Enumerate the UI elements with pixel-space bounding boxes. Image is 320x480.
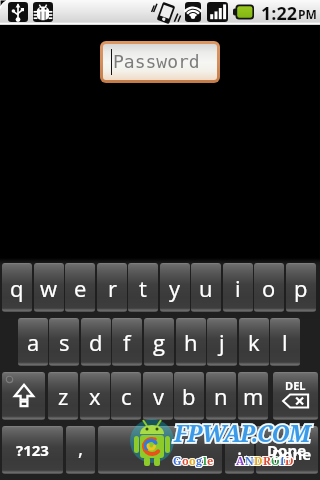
button[interactable]: Space	[98, 426, 222, 474]
staticText: l	[203, 453, 207, 468]
staticText: x	[89, 381, 101, 411]
staticText: I	[280, 453, 285, 468]
staticText: o	[189, 453, 196, 468]
staticText: A	[236, 453, 245, 468]
staticText: q	[10, 273, 24, 303]
staticText: o	[189, 453, 196, 468]
staticText: e	[207, 453, 214, 468]
staticText: Password	[113, 51, 200, 72]
staticText: N	[245, 453, 254, 468]
staticText: d	[89, 327, 103, 357]
button[interactable]: p	[286, 263, 316, 312]
staticText: ,	[78, 434, 84, 461]
staticText: e	[74, 273, 87, 303]
staticText: O	[271, 453, 280, 468]
staticText: f	[123, 327, 131, 357]
staticText: G	[173, 453, 182, 468]
button[interactable]: Password	[103, 44, 217, 80]
button[interactable]: n	[206, 372, 236, 420]
staticText: D	[254, 453, 263, 468]
button[interactable]: s	[49, 318, 79, 366]
staticText: FPWAP.COM	[174, 417, 310, 448]
button[interactable]: x	[80, 372, 110, 420]
staticText: R	[263, 453, 271, 468]
staticText: s	[59, 327, 70, 357]
staticText: j	[219, 327, 225, 357]
staticText: o	[262, 273, 276, 303]
button[interactable]: a	[18, 318, 48, 366]
staticText: Done	[267, 440, 307, 460]
button[interactable]: u	[191, 263, 221, 312]
staticText: w	[40, 273, 58, 303]
button[interactable]: q	[2, 263, 32, 312]
staticText: D	[254, 453, 263, 468]
staticText: l	[282, 327, 288, 357]
button[interactable]: t	[128, 263, 158, 312]
staticText: b	[182, 381, 196, 411]
button[interactable]: ?123	[2, 426, 63, 474]
staticText: FPWAP.COM	[174, 417, 310, 448]
staticText: R	[263, 453, 271, 468]
button[interactable]: e	[65, 263, 95, 312]
button[interactable]: m	[238, 372, 268, 420]
staticText: v	[153, 381, 164, 411]
staticText: .	[237, 434, 243, 461]
staticText: D	[285, 453, 294, 468]
staticText: D	[285, 453, 294, 468]
staticText: Done	[272, 444, 312, 464]
staticText: k	[248, 327, 260, 357]
staticText: p	[294, 273, 308, 303]
staticText: G	[173, 453, 182, 468]
staticText: c	[121, 381, 132, 411]
button[interactable]: .	[225, 426, 254, 474]
staticText: N	[245, 453, 254, 468]
button[interactable]: h	[176, 318, 206, 366]
staticText: m	[243, 381, 264, 411]
staticText: ?123	[16, 440, 49, 460]
button[interactable]: w	[34, 263, 64, 312]
staticText: i	[235, 273, 241, 303]
staticText: O	[271, 453, 280, 468]
staticText: e	[207, 453, 214, 468]
staticText: z	[58, 381, 69, 411]
button[interactable]: y	[160, 263, 190, 312]
staticText: o	[182, 453, 189, 468]
staticText: I	[280, 453, 285, 468]
staticText: l	[203, 453, 207, 468]
staticText: r	[108, 273, 117, 303]
button[interactable]: v	[143, 372, 173, 420]
button[interactable]: ,	[66, 426, 95, 474]
staticText: 1:22	[261, 1, 298, 26]
staticText: u	[199, 273, 213, 303]
staticText: A	[236, 453, 245, 468]
button[interactable]: c	[111, 372, 141, 420]
staticText: n	[214, 381, 228, 411]
staticText: g	[196, 453, 203, 468]
button[interactable]: j	[207, 318, 237, 366]
staticText: DEL	[285, 378, 306, 393]
button[interactable]: z	[48, 372, 78, 420]
button[interactable]: d	[81, 318, 111, 366]
button[interactable]: o	[254, 263, 284, 312]
button[interactable]: Shift	[2, 372, 45, 420]
staticText: o	[182, 453, 189, 468]
staticText: g	[196, 453, 203, 468]
button[interactable]: l	[270, 318, 300, 366]
button[interactable]: Delete	[273, 372, 318, 420]
button[interactable]: k	[239, 318, 269, 366]
staticText: t	[139, 273, 147, 303]
staticText: PM	[298, 6, 317, 22]
staticText: g	[153, 327, 165, 357]
button[interactable]: b	[174, 372, 204, 420]
staticText: y	[169, 273, 181, 303]
button[interactable]: r	[97, 263, 127, 312]
staticText: h	[184, 327, 198, 357]
staticText: a	[27, 327, 40, 357]
button[interactable]: Done	[256, 426, 318, 474]
button[interactable]: i	[223, 263, 253, 312]
button[interactable]: g	[144, 318, 174, 366]
button[interactable]: f	[112, 318, 142, 366]
